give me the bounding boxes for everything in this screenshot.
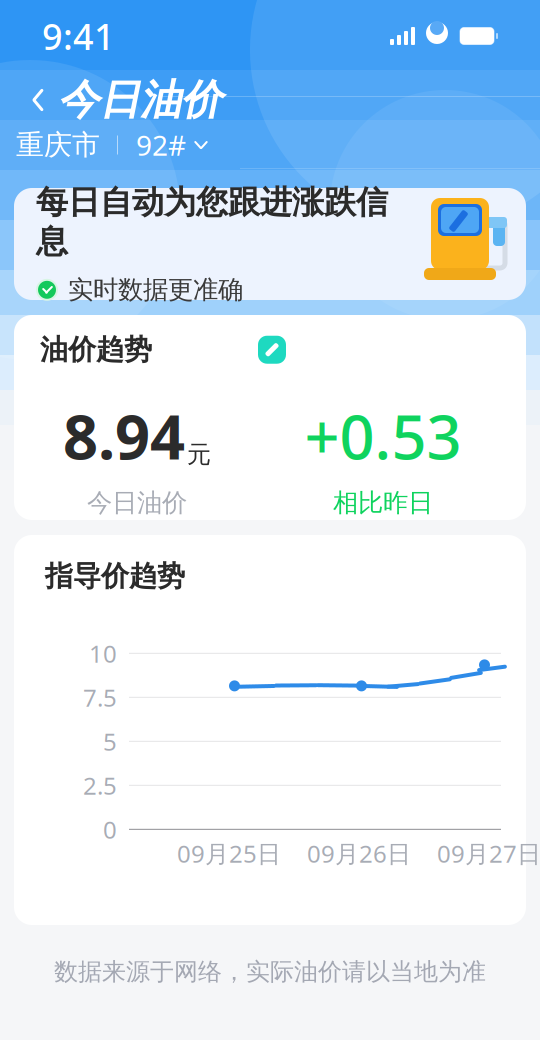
staticText: 今日油价 bbox=[87, 487, 187, 518]
staticText: 元 bbox=[187, 440, 211, 469]
staticText: 09月26日 bbox=[307, 837, 411, 869]
staticText: 7.5 bbox=[83, 681, 117, 713]
staticText: 5 bbox=[103, 725, 117, 757]
staticText: 相比昨日 bbox=[333, 487, 433, 518]
button[interactable]: 重庆市 bbox=[16, 128, 100, 162]
staticText: 8.94 bbox=[63, 395, 185, 476]
button[interactable]: 返回 bbox=[18, 77, 58, 123]
staticText: 每日自动为您跟进涨跌信息 bbox=[36, 183, 388, 261]
staticText: 实时数据更准确 bbox=[68, 274, 243, 305]
staticText: 09月27日 bbox=[437, 837, 540, 869]
staticText: 数据来源于网络，实际油价请以当地为准 bbox=[54, 957, 486, 986]
staticText: 2.5 bbox=[83, 769, 117, 801]
staticText: 重庆市 bbox=[16, 128, 100, 162]
button[interactable]: 92# bbox=[136, 126, 208, 164]
staticText: 92# bbox=[136, 126, 186, 164]
staticText: 10 bbox=[89, 637, 117, 669]
staticText: 油价趋势 bbox=[40, 332, 152, 367]
staticText: +0.53 bbox=[304, 395, 461, 476]
staticText: 指导价趋势 bbox=[45, 559, 185, 593]
staticText: 0 bbox=[103, 813, 117, 845]
staticText: 09月25日 bbox=[177, 837, 281, 869]
staticText: 9:41 bbox=[42, 12, 115, 60]
button[interactable]: 编辑 bbox=[258, 336, 286, 364]
staticText: 今日油价 bbox=[58, 75, 222, 125]
button[interactable]: 每日自动为您跟进涨跌信息 bbox=[14, 188, 526, 300]
